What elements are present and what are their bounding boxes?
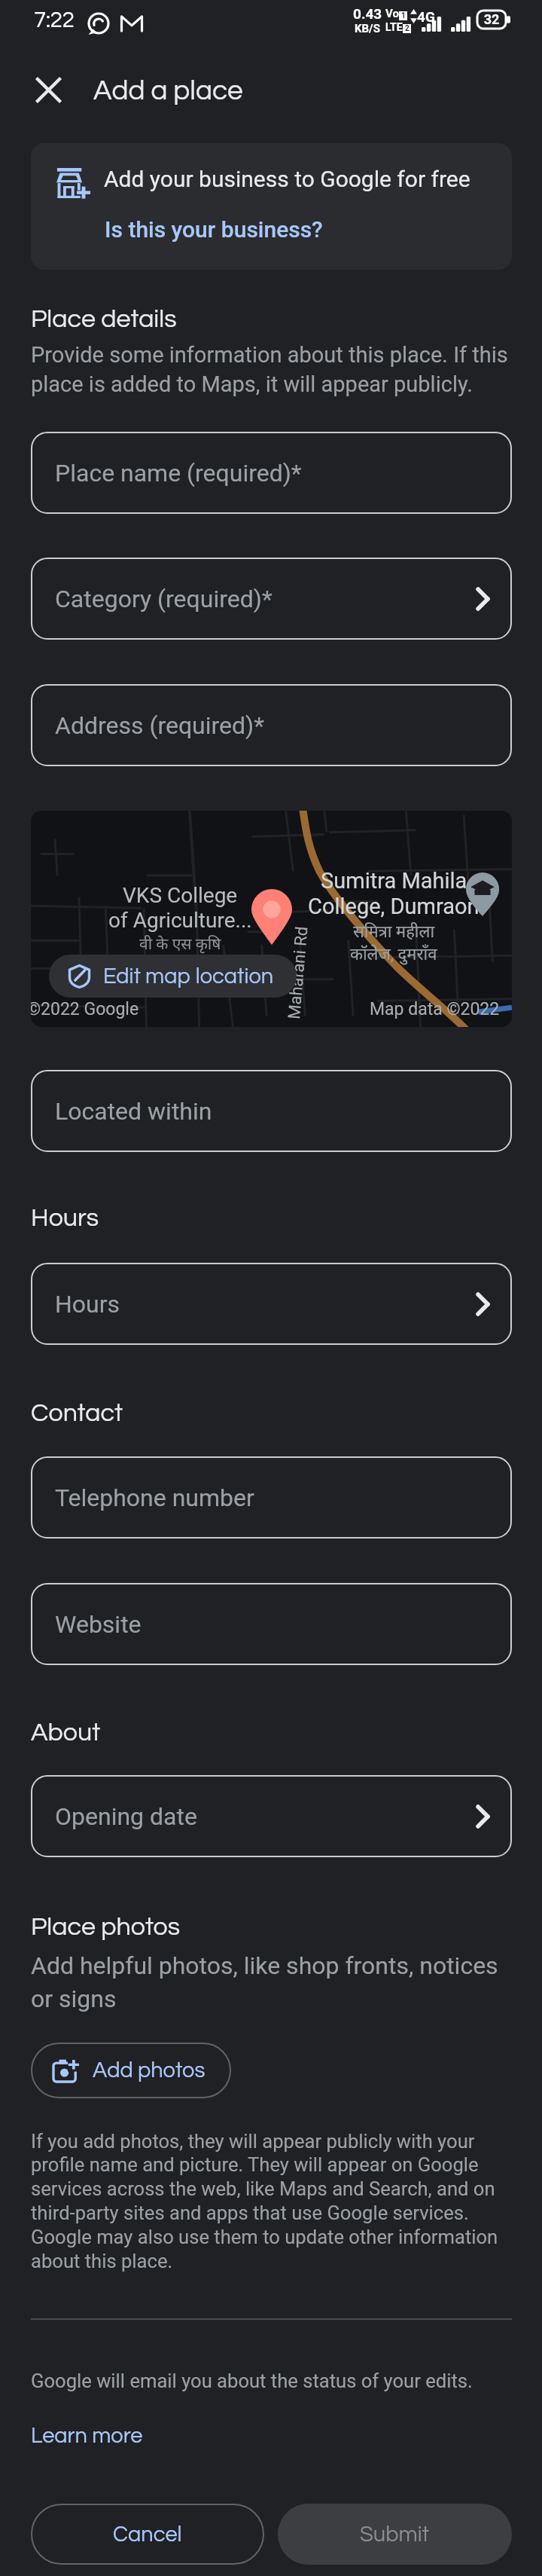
- staticText: College, Dumraon: [308, 894, 480, 919]
- button[interactable]: Close: [21, 63, 75, 117]
- button[interactable]: Hours: [31, 1263, 512, 1345]
- staticText: Add your business to Google for free: [104, 166, 470, 192]
- staticText: Submit: [360, 2523, 430, 2546]
- button[interactable]: Telephone number: [31, 1456, 512, 1539]
- staticText: समित्रा महीला: [353, 919, 435, 942]
- staticText: Cancel: [113, 2523, 182, 2546]
- staticText: Vo: [385, 7, 399, 20]
- staticText: Google will email you about the status o…: [31, 2370, 473, 2392]
- staticText: Sumitra Mahila: [321, 868, 467, 894]
- staticText: 4G: [417, 8, 435, 25]
- button[interactable]: Add photos: [31, 2043, 231, 2098]
- staticText: Category (required)*: [55, 585, 273, 613]
- staticText: Is this your business?: [105, 216, 323, 243]
- button[interactable]: Add your business to Google for free: [31, 143, 512, 270]
- staticText: LTE: [385, 21, 403, 33]
- button[interactable]: Learn more: [31, 2425, 143, 2447]
- button[interactable]: Website: [31, 1583, 512, 1665]
- staticText: Website: [55, 1610, 142, 1639]
- staticText: Address (required)*: [55, 711, 265, 740]
- staticText: KB/S: [355, 22, 380, 35]
- staticText: 32: [477, 11, 506, 27]
- staticText: Add photos: [93, 2059, 206, 2082]
- button[interactable]: Opening date: [31, 1775, 512, 1857]
- staticText: Located within: [55, 1097, 212, 1126]
- button[interactable]: Address (required)*: [31, 684, 512, 766]
- button[interactable]: Edit map location: [49, 955, 297, 998]
- staticText: Place photos: [31, 1914, 181, 1940]
- staticText: Place details: [31, 306, 177, 332]
- staticText: 0.43: [353, 5, 382, 22]
- staticText: 7:22: [34, 9, 75, 32]
- staticText: Contact: [31, 1400, 123, 1426]
- staticText: कॉलेज, दुमराँव: [350, 942, 437, 964]
- staticText: Telephone number: [55, 1484, 254, 1512]
- staticText: Add helpful photos, like shop fronts, no…: [31, 1951, 512, 2013]
- staticText: वी के एस कृषि: [139, 933, 221, 955]
- button[interactable]: Submit: [278, 2504, 512, 2565]
- button[interactable]: Place name (required)*: [31, 432, 512, 514]
- staticText: Edit map location: [103, 965, 274, 988]
- staticText: Add a place: [93, 77, 243, 105]
- staticText: Maharani Rd: [285, 925, 312, 1020]
- staticText: Hours: [31, 1205, 99, 1231]
- button[interactable]: Located within: [31, 1070, 512, 1152]
- staticText: Map data ©2022: [370, 999, 500, 1019]
- staticText: of Agriculture...: [108, 908, 252, 933]
- staticText: 1: [401, 11, 406, 20]
- staticText: About: [31, 1719, 101, 1746]
- staticText: Hours: [55, 1290, 120, 1319]
- button[interactable]: Cancel: [31, 2504, 264, 2565]
- button[interactable]: Category (required)*: [31, 558, 512, 640]
- button[interactable]: Is this your business?: [105, 216, 323, 243]
- staticText: If you add photos, they will appear publ…: [31, 2130, 512, 2272]
- staticText: Opening date: [55, 1802, 197, 1831]
- button[interactable]: Map: [31, 811, 512, 1027]
- staticText: 2: [405, 24, 410, 33]
- staticText: ©2022 Google: [31, 999, 139, 1019]
- staticText: VKS College: [123, 883, 238, 908]
- staticText: Learn more: [31, 2425, 143, 2447]
- staticText: Provide some information about this plac…: [31, 342, 512, 397]
- staticText: Place name (required)*: [55, 459, 302, 487]
